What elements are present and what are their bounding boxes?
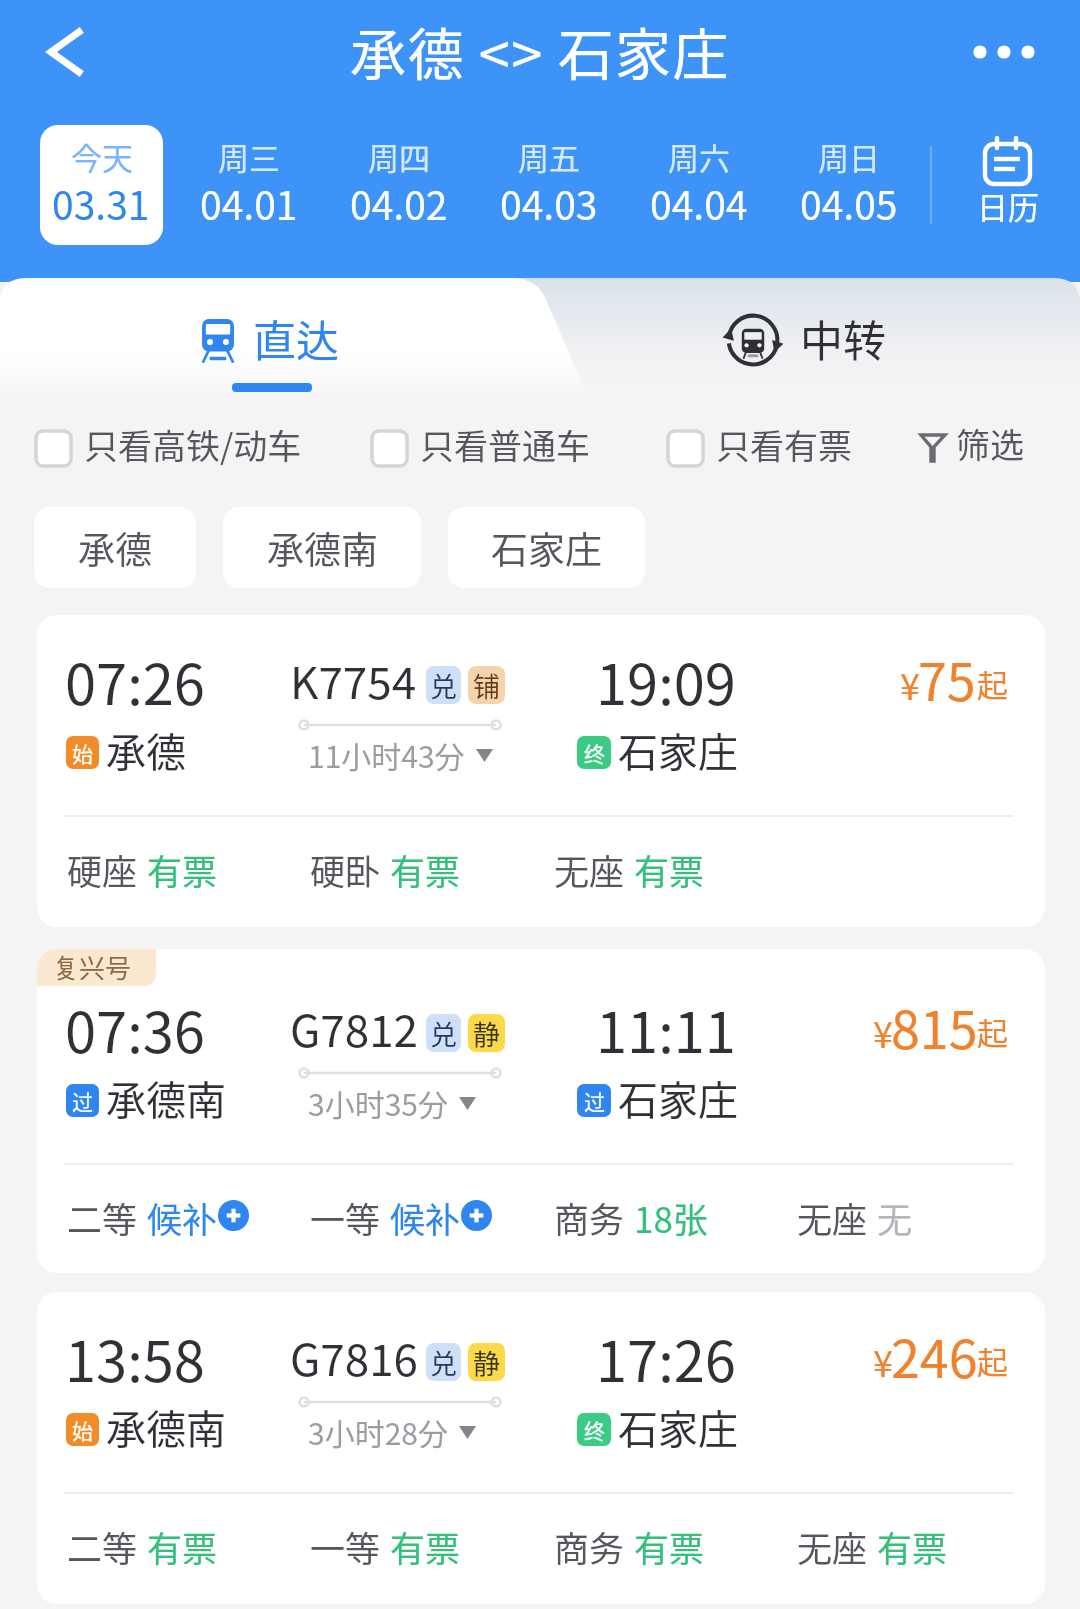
staticText: 周四 [368, 134, 430, 179]
staticText: 终 [584, 1415, 605, 1445]
button[interactable] [40, 125, 163, 245]
staticText: 商务 [554, 1192, 625, 1243]
staticText: 只看普通车 [420, 420, 590, 469]
button[interactable] [625, 125, 773, 245]
staticText: K7754 [290, 648, 417, 712]
staticText: 07:36 [65, 988, 205, 1069]
staticText: 石家庄 [491, 521, 602, 575]
staticText: 终 [584, 738, 605, 768]
staticText: 周五 [518, 134, 580, 179]
staticText: 75 [918, 641, 976, 716]
button[interactable] [540, 278, 1080, 400]
staticText: ¥ [873, 1006, 893, 1058]
staticText: 承德 [106, 721, 186, 779]
staticText: 有票 [634, 1521, 705, 1572]
staticText: 11:11 [596, 988, 736, 1069]
staticText: 13:58 [65, 1317, 205, 1398]
staticText: 3小时28分 [308, 1410, 448, 1453]
staticText: 始 [72, 1415, 93, 1445]
button[interactable] [36, 420, 306, 476]
staticText: 无座 [797, 1192, 868, 1243]
staticText: 17:26 [596, 1317, 736, 1398]
staticText: 商务 [554, 1521, 625, 1572]
staticText: 始 [72, 738, 93, 768]
staticText: 04.05 [800, 175, 898, 231]
button[interactable] [37, 949, 1045, 1273]
staticText: 246 [891, 1318, 978, 1393]
staticText: 日历 [977, 183, 1039, 228]
staticText: 兑 [430, 1014, 457, 1052]
staticText: 候补 [147, 1192, 218, 1243]
button[interactable] [0, 278, 540, 400]
button[interactable]: 承德南 [223, 507, 421, 588]
staticText: 石家庄 [618, 1398, 738, 1456]
staticText: 直达 [253, 307, 339, 369]
staticText: 19:09 [596, 640, 736, 721]
button[interactable]: Back [20, 8, 112, 100]
staticText: 有票 [390, 844, 461, 895]
staticText: 3小时35分 [308, 1081, 448, 1124]
staticText: ¥ [873, 1335, 893, 1387]
button[interactable]: 承德 [34, 507, 196, 588]
staticText: 一等 [310, 1192, 381, 1243]
staticText: 铺 [473, 666, 500, 704]
staticText: 04.04 [650, 175, 748, 231]
staticText: 二等 [67, 1521, 138, 1572]
staticText: 硬卧 [310, 844, 381, 895]
staticText: 承德南 [106, 1069, 226, 1127]
staticText: 18张 [634, 1192, 708, 1243]
button[interactable]: 石家庄 [448, 507, 645, 588]
staticText: 有票 [147, 1521, 218, 1572]
button[interactable] [372, 420, 642, 476]
staticText: 静 [473, 1014, 500, 1052]
staticText: 起 [977, 661, 1008, 706]
staticText: 815 [891, 989, 978, 1064]
staticText: 候补 [390, 1192, 461, 1243]
staticText: 04.01 [200, 175, 298, 231]
button[interactable] [175, 125, 323, 245]
staticText: G7812 [290, 996, 418, 1060]
staticText: 中转 [800, 307, 886, 369]
staticText: 静 [473, 1343, 500, 1381]
staticText: 兑 [430, 1343, 457, 1381]
staticText: 一等 [310, 1521, 381, 1572]
staticText: 04.02 [350, 175, 448, 231]
staticText: 周六 [668, 134, 730, 179]
staticText: 只看高铁/动车 [84, 420, 302, 469]
button[interactable] [775, 125, 923, 245]
staticText: 有票 [634, 844, 705, 895]
staticText: 承德南 [267, 521, 378, 575]
staticText: 起 [977, 1338, 1008, 1383]
button[interactable]: Calendar [940, 125, 1062, 245]
staticText: 复兴号 [53, 948, 132, 986]
staticText: 兑 [430, 666, 457, 704]
staticText: 承德南 [106, 1398, 226, 1456]
staticText: 二等 [67, 1192, 138, 1243]
button[interactable] [37, 615, 1045, 927]
staticText: G7816 [290, 1325, 418, 1389]
staticText: 11小时43分 [308, 733, 465, 776]
staticText: 无座 [797, 1521, 868, 1572]
staticText: 有票 [877, 1521, 948, 1572]
button[interactable] [908, 420, 1040, 476]
staticText: 有票 [147, 844, 218, 895]
staticText: 无座 [554, 844, 625, 895]
staticText: 承德 <> 石家庄 [0, 10, 1080, 91]
button[interactable] [325, 125, 473, 245]
staticText: 周三 [218, 134, 280, 179]
staticText: 今天 [71, 134, 133, 179]
staticText: 过 [72, 1086, 93, 1116]
button[interactable]: More options [958, 8, 1050, 100]
staticText: 硬座 [67, 844, 138, 895]
button[interactable] [37, 1292, 1045, 1604]
staticText: 承德 [78, 521, 152, 575]
staticText: 04.03 [500, 175, 598, 231]
staticText: ¥ [900, 658, 920, 710]
staticText: 过 [584, 1086, 605, 1116]
button[interactable] [668, 420, 938, 476]
staticText: 周日 [818, 134, 880, 179]
staticText: 筛选 [956, 419, 1024, 468]
button[interactable] [475, 125, 623, 245]
staticText: 只看有票 [716, 420, 852, 469]
staticText: 起 [977, 1009, 1008, 1054]
